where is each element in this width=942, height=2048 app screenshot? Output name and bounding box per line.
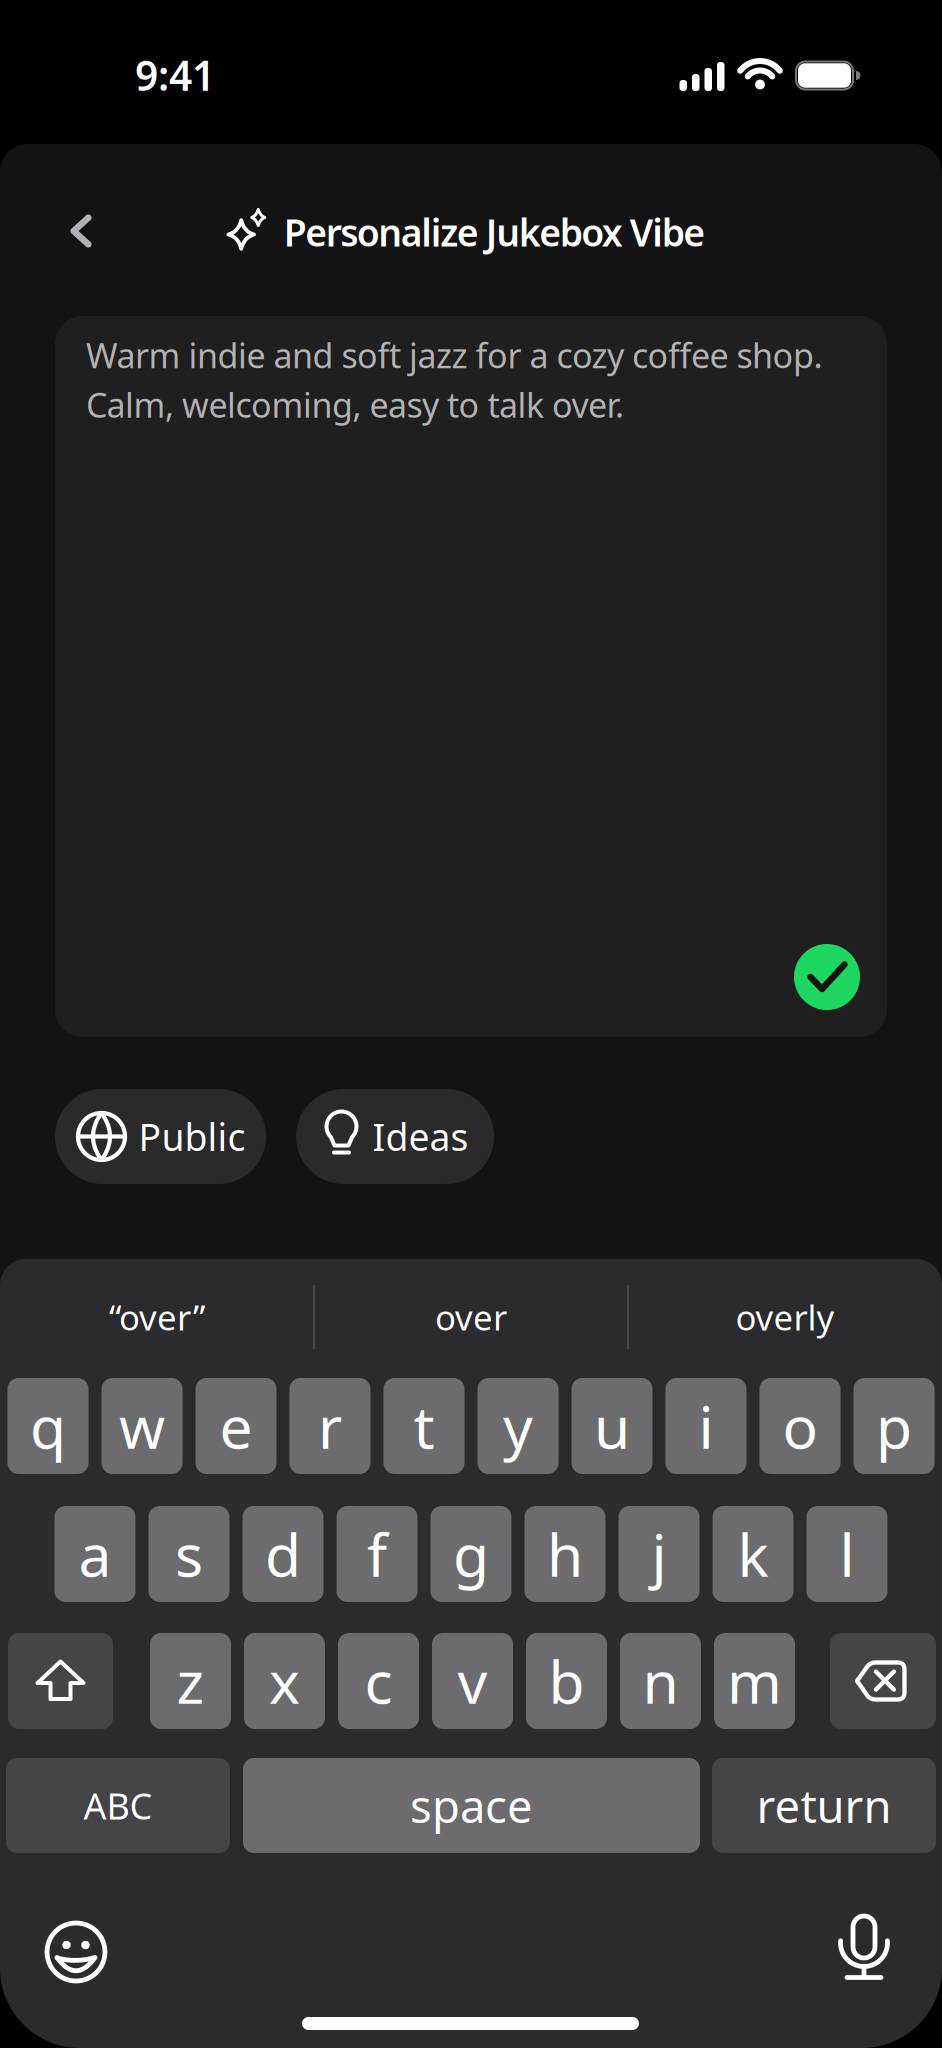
button[interactable]: over (326, 1277, 616, 1357)
button[interactable]: w (101, 1378, 182, 1474)
button[interactable]: Public (55, 1089, 266, 1184)
staticText: x (269, 1642, 300, 1720)
staticText: Public (138, 1112, 245, 1161)
staticText: j (651, 1515, 666, 1593)
staticText: r (318, 1387, 342, 1465)
button[interactable]: Done (794, 944, 860, 1010)
staticText: t (413, 1387, 434, 1465)
staticText: i (698, 1387, 713, 1465)
staticText: over (435, 1294, 507, 1340)
staticText: z (176, 1642, 204, 1720)
staticText: 9:41 (135, 47, 215, 103)
staticText: k (737, 1515, 768, 1593)
staticText: ABC (83, 1782, 152, 1829)
staticText: Personalize Jukebox Vibe (284, 207, 705, 257)
staticText: space (410, 1775, 533, 1836)
staticText: d (265, 1515, 301, 1593)
staticText: g (453, 1515, 489, 1593)
staticText: h (547, 1515, 583, 1593)
button[interactable]: f (336, 1506, 417, 1602)
staticText: o (782, 1387, 817, 1465)
button[interactable]: Shift (8, 1633, 113, 1729)
button[interactable]: v (432, 1633, 513, 1729)
button[interactable]: space (243, 1758, 700, 1853)
button[interactable]: o (759, 1378, 840, 1474)
button[interactable]: n (620, 1633, 701, 1729)
staticText: b (548, 1642, 584, 1720)
button[interactable]: Dictate (838, 1916, 890, 1992)
button[interactable]: d (242, 1506, 323, 1602)
staticText: w (119, 1387, 165, 1465)
staticText: u (594, 1387, 630, 1465)
button[interactable]: Back (59, 204, 103, 258)
button[interactable]: c (338, 1633, 419, 1729)
button[interactable]: m (714, 1633, 795, 1729)
button[interactable]: return (712, 1758, 936, 1853)
button[interactable]: r (289, 1378, 370, 1474)
button[interactable]: a (54, 1506, 135, 1602)
staticText: Ideas (372, 1112, 468, 1161)
staticText: c (364, 1642, 392, 1720)
staticText: a (78, 1515, 111, 1593)
button[interactable]: x (244, 1633, 325, 1729)
staticText: f (367, 1515, 387, 1593)
staticText: m (727, 1642, 782, 1720)
button[interactable]: Emoji (44, 1920, 108, 1984)
button[interactable]: e (195, 1378, 276, 1474)
button[interactable]: k (712, 1506, 793, 1602)
staticText: y (503, 1387, 533, 1465)
staticText: l (839, 1515, 854, 1593)
button[interactable]: b (526, 1633, 607, 1729)
button[interactable]: y (477, 1378, 558, 1474)
button[interactable]: t (383, 1378, 464, 1474)
staticText: e (219, 1387, 252, 1465)
staticText: p (876, 1387, 912, 1465)
button[interactable]: Ideas (296, 1089, 494, 1184)
button[interactable]: z (150, 1633, 231, 1729)
staticText: Warm indie and soft jazz for a cozy coff… (86, 332, 822, 428)
button[interactable]: h (524, 1506, 605, 1602)
staticText: n (642, 1642, 678, 1720)
button[interactable]: Delete (830, 1633, 936, 1729)
button[interactable]: “over” (12, 1277, 302, 1357)
button[interactable]: i (665, 1378, 746, 1474)
staticText: “over” (109, 1294, 205, 1340)
staticText: overly (735, 1294, 834, 1340)
button[interactable]: s (148, 1506, 229, 1602)
staticText: return (756, 1775, 891, 1836)
button[interactable]: ABC (6, 1758, 230, 1853)
button[interactable]: j (618, 1506, 699, 1602)
button[interactable]: overly (640, 1277, 930, 1357)
button[interactable]: q (7, 1378, 88, 1474)
staticText: q (30, 1387, 66, 1465)
staticText: v (457, 1642, 487, 1720)
staticText: s (175, 1515, 203, 1593)
button[interactable]: u (571, 1378, 652, 1474)
button[interactable]: l (806, 1506, 887, 1602)
button[interactable]: g (430, 1506, 511, 1602)
button[interactable]: p (853, 1378, 934, 1474)
